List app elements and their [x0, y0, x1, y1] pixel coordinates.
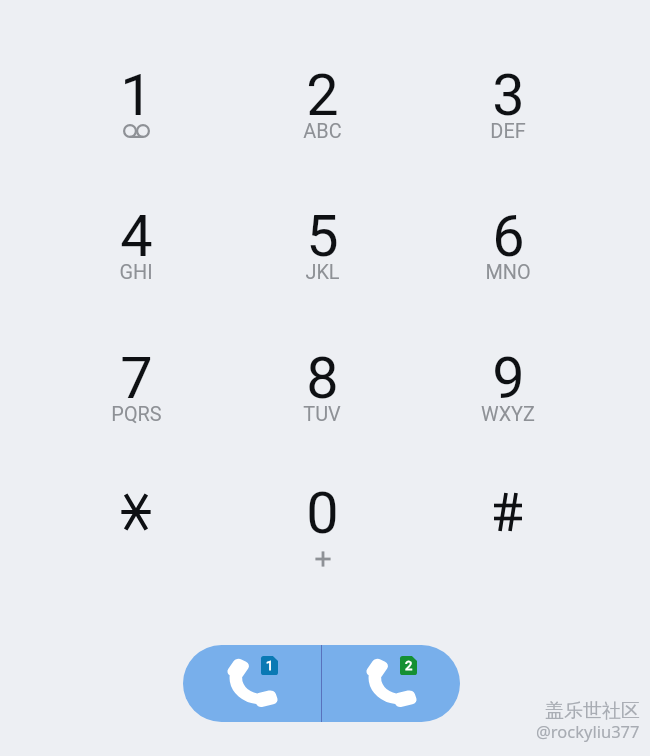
- staticText: 6: [492, 202, 525, 266]
- staticText: @rockyliu377: [536, 720, 640, 742]
- button[interactable]: Call with SIM 1: [183, 645, 321, 722]
- staticText: PQRS: [111, 403, 162, 426]
- button[interactable]: 5: [229, 202, 415, 343]
- button[interactable]: 6: [415, 202, 601, 343]
- staticText: MNO: [485, 261, 531, 284]
- staticText: 2: [405, 658, 413, 673]
- button[interactable]: Star: [43, 463, 229, 563]
- button[interactable]: 2: [229, 61, 415, 202]
- button[interactable]: 9: [415, 344, 601, 485]
- staticText: 0: [306, 479, 339, 543]
- button[interactable]: 8: [229, 344, 415, 485]
- button[interactable]: 4: [43, 202, 229, 343]
- staticText: DEF: [490, 120, 526, 143]
- staticText: JKL: [305, 261, 340, 284]
- button[interactable]: 3: [415, 61, 601, 202]
- staticText: 4: [120, 202, 153, 266]
- staticText: 1: [266, 658, 274, 673]
- staticText: 3: [492, 61, 525, 125]
- staticText: 8: [306, 344, 339, 408]
- staticText: WXYZ: [481, 403, 535, 426]
- button[interactable]: 1: [43, 61, 229, 202]
- staticText: 7: [120, 344, 153, 408]
- button[interactable]: Call with SIM 2: [322, 645, 460, 722]
- staticText: TUV: [303, 403, 341, 426]
- staticText: 1: [120, 61, 153, 125]
- button[interactable]: 7: [43, 344, 229, 485]
- staticText: 盖乐世社区: [545, 699, 640, 723]
- staticText: 5: [306, 202, 339, 266]
- staticText: ABC: [303, 120, 342, 143]
- button[interactable]: 0: [229, 479, 415, 620]
- staticText: GHI: [119, 261, 153, 284]
- button[interactable]: Pound: [415, 463, 601, 563]
- staticText: 2: [306, 61, 339, 125]
- staticText: 9: [492, 344, 525, 408]
